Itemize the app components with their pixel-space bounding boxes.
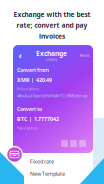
- staticText: 48nuGuik7pxmSHkBfpMTCLRNBdemqp: [17, 93, 87, 98]
- staticText: BTC | 1.7777042: [17, 115, 59, 123]
- button[interactable]: Back: [17, 51, 23, 59]
- staticText: instantly: [46, 58, 57, 61]
- staticText: Exchange: [36, 49, 67, 58]
- staticText: Refund address: [17, 88, 39, 91]
- staticText: Payout address: [17, 127, 37, 130]
- staticText: Fixed rate: [30, 158, 54, 165]
- staticText: ‹: [18, 49, 21, 61]
- staticText: Exchange with the best: [13, 10, 90, 19]
- button[interactable]: Fixed rate: [30, 158, 54, 165]
- staticText: Convert to: [17, 105, 42, 112]
- staticText: invoices: [39, 32, 65, 41]
- button[interactable]: Card: [6, 146, 23, 163]
- staticText: Convert from: [17, 66, 49, 73]
- staticText: XMR | 420.49: [17, 76, 52, 84]
- staticText: Reset: [80, 52, 89, 58]
- button[interactable]: New Template: [30, 170, 65, 177]
- staticText: New Template: [30, 170, 65, 177]
- staticText: rate; convert and pay: [16, 21, 87, 30]
- button[interactable]: Reset: [80, 52, 89, 58]
